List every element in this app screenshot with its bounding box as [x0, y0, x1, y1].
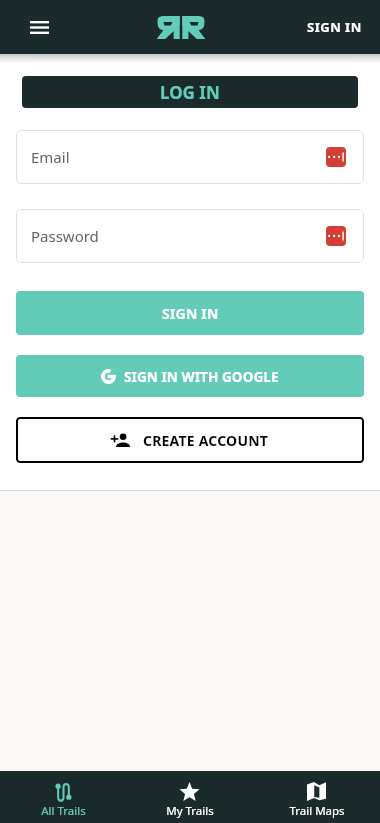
staticText: CREATE ACCOUNT: [143, 431, 269, 450]
button[interactable]: Trail Maps: [253, 771, 380, 823]
button[interactable]: CREATE ACCOUNT: [16, 417, 364, 463]
other: Autofill password: [326, 226, 346, 246]
staticText: Password: [31, 226, 99, 246]
staticText: Trail Maps: [289, 803, 345, 819]
button[interactable]: All Trails: [0, 771, 126, 823]
button[interactable]: Email: [16, 130, 364, 184]
staticText: Email: [31, 147, 70, 167]
button[interactable]: SIGN IN: [303, 10, 366, 44]
other: Autofill password: [326, 147, 346, 167]
staticText: My Trails: [166, 803, 214, 819]
button[interactable]: Password: [16, 209, 364, 263]
button[interactable]: LOG IN: [22, 76, 358, 108]
button[interactable]: SIGN IN WITH GOOGLE: [16, 355, 364, 397]
button[interactable]: Menu: [16, 0, 62, 54]
button[interactable]: My Trails: [126, 771, 253, 823]
staticText: SIGN IN: [307, 18, 362, 36]
button[interactable]: SIGN IN: [16, 291, 364, 335]
staticText: LOG IN: [160, 81, 220, 104]
staticText: SIGN IN: [162, 304, 219, 323]
staticText: All Trails: [41, 803, 86, 819]
staticText: SIGN IN WITH GOOGLE: [124, 367, 279, 386]
